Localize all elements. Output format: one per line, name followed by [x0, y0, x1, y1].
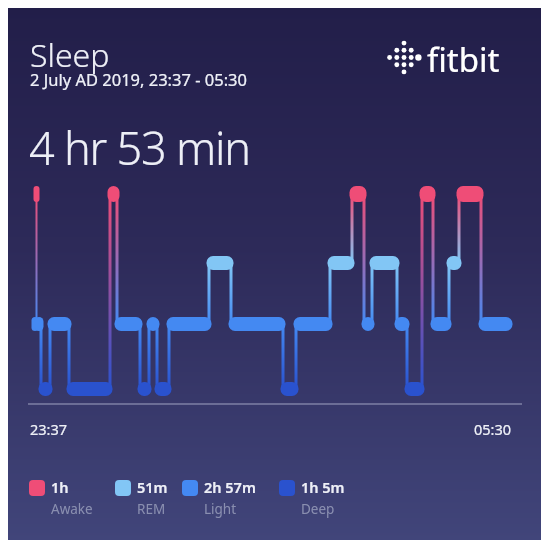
staticText: REM [137, 500, 166, 518]
button[interactable]: 2h 57m [182, 477, 234, 497]
staticText: fitbit [427, 37, 500, 82]
staticText: Sleep [30, 33, 110, 77]
staticText: Light [204, 500, 237, 518]
staticText: 4 hr 53 min [29, 117, 250, 178]
staticText: 1h 5m [301, 477, 345, 497]
button[interactable]: 1h 5m [279, 477, 323, 497]
button[interactable]: 1h [29, 477, 71, 497]
staticText: Awake [51, 500, 93, 518]
staticText: 51m [137, 477, 168, 497]
staticText: 05:30 [474, 419, 512, 439]
staticText: Deep [301, 500, 335, 518]
staticText: 1h [51, 477, 69, 497]
button[interactable]: 51m [115, 477, 146, 497]
staticText: 2h 57m [204, 477, 256, 497]
staticText: 23:37 [30, 419, 68, 439]
staticText: 2 July AD 2019, 23:37 - 05:30 [30, 68, 247, 90]
